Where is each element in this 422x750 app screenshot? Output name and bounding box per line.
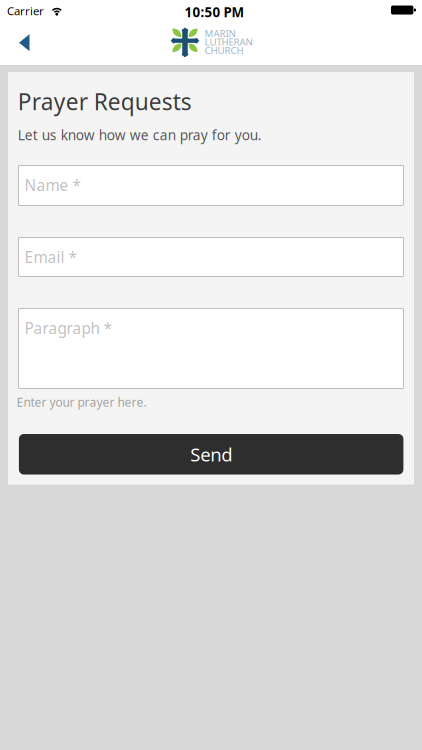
- staticText: Enter your prayer here.: [16, 394, 146, 410]
- staticText: Let us know how we can pray for you.: [18, 125, 262, 144]
- staticText: MARIN: [204, 26, 235, 40]
- staticText: Paragraph *: [24, 317, 111, 338]
- staticText: Prayer Requests: [18, 86, 192, 117]
- button[interactable]: Back: [8, 25, 42, 61]
- button[interactable]: Email *: [18, 237, 403, 276]
- staticText: LUTHERAN: [204, 35, 252, 48]
- staticText: Name *: [24, 174, 80, 195]
- button[interactable]: Name *: [18, 165, 403, 205]
- staticText: Email *: [24, 246, 76, 267]
- staticText: Carrier: [7, 3, 44, 18]
- staticText: Send: [190, 442, 232, 467]
- staticText: CHURCH: [204, 44, 243, 57]
- button[interactable]: Send: [19, 434, 403, 474]
- staticText: 10:50 PM: [184, 3, 244, 21]
- button[interactable]: Paragraph *: [18, 308, 403, 388]
